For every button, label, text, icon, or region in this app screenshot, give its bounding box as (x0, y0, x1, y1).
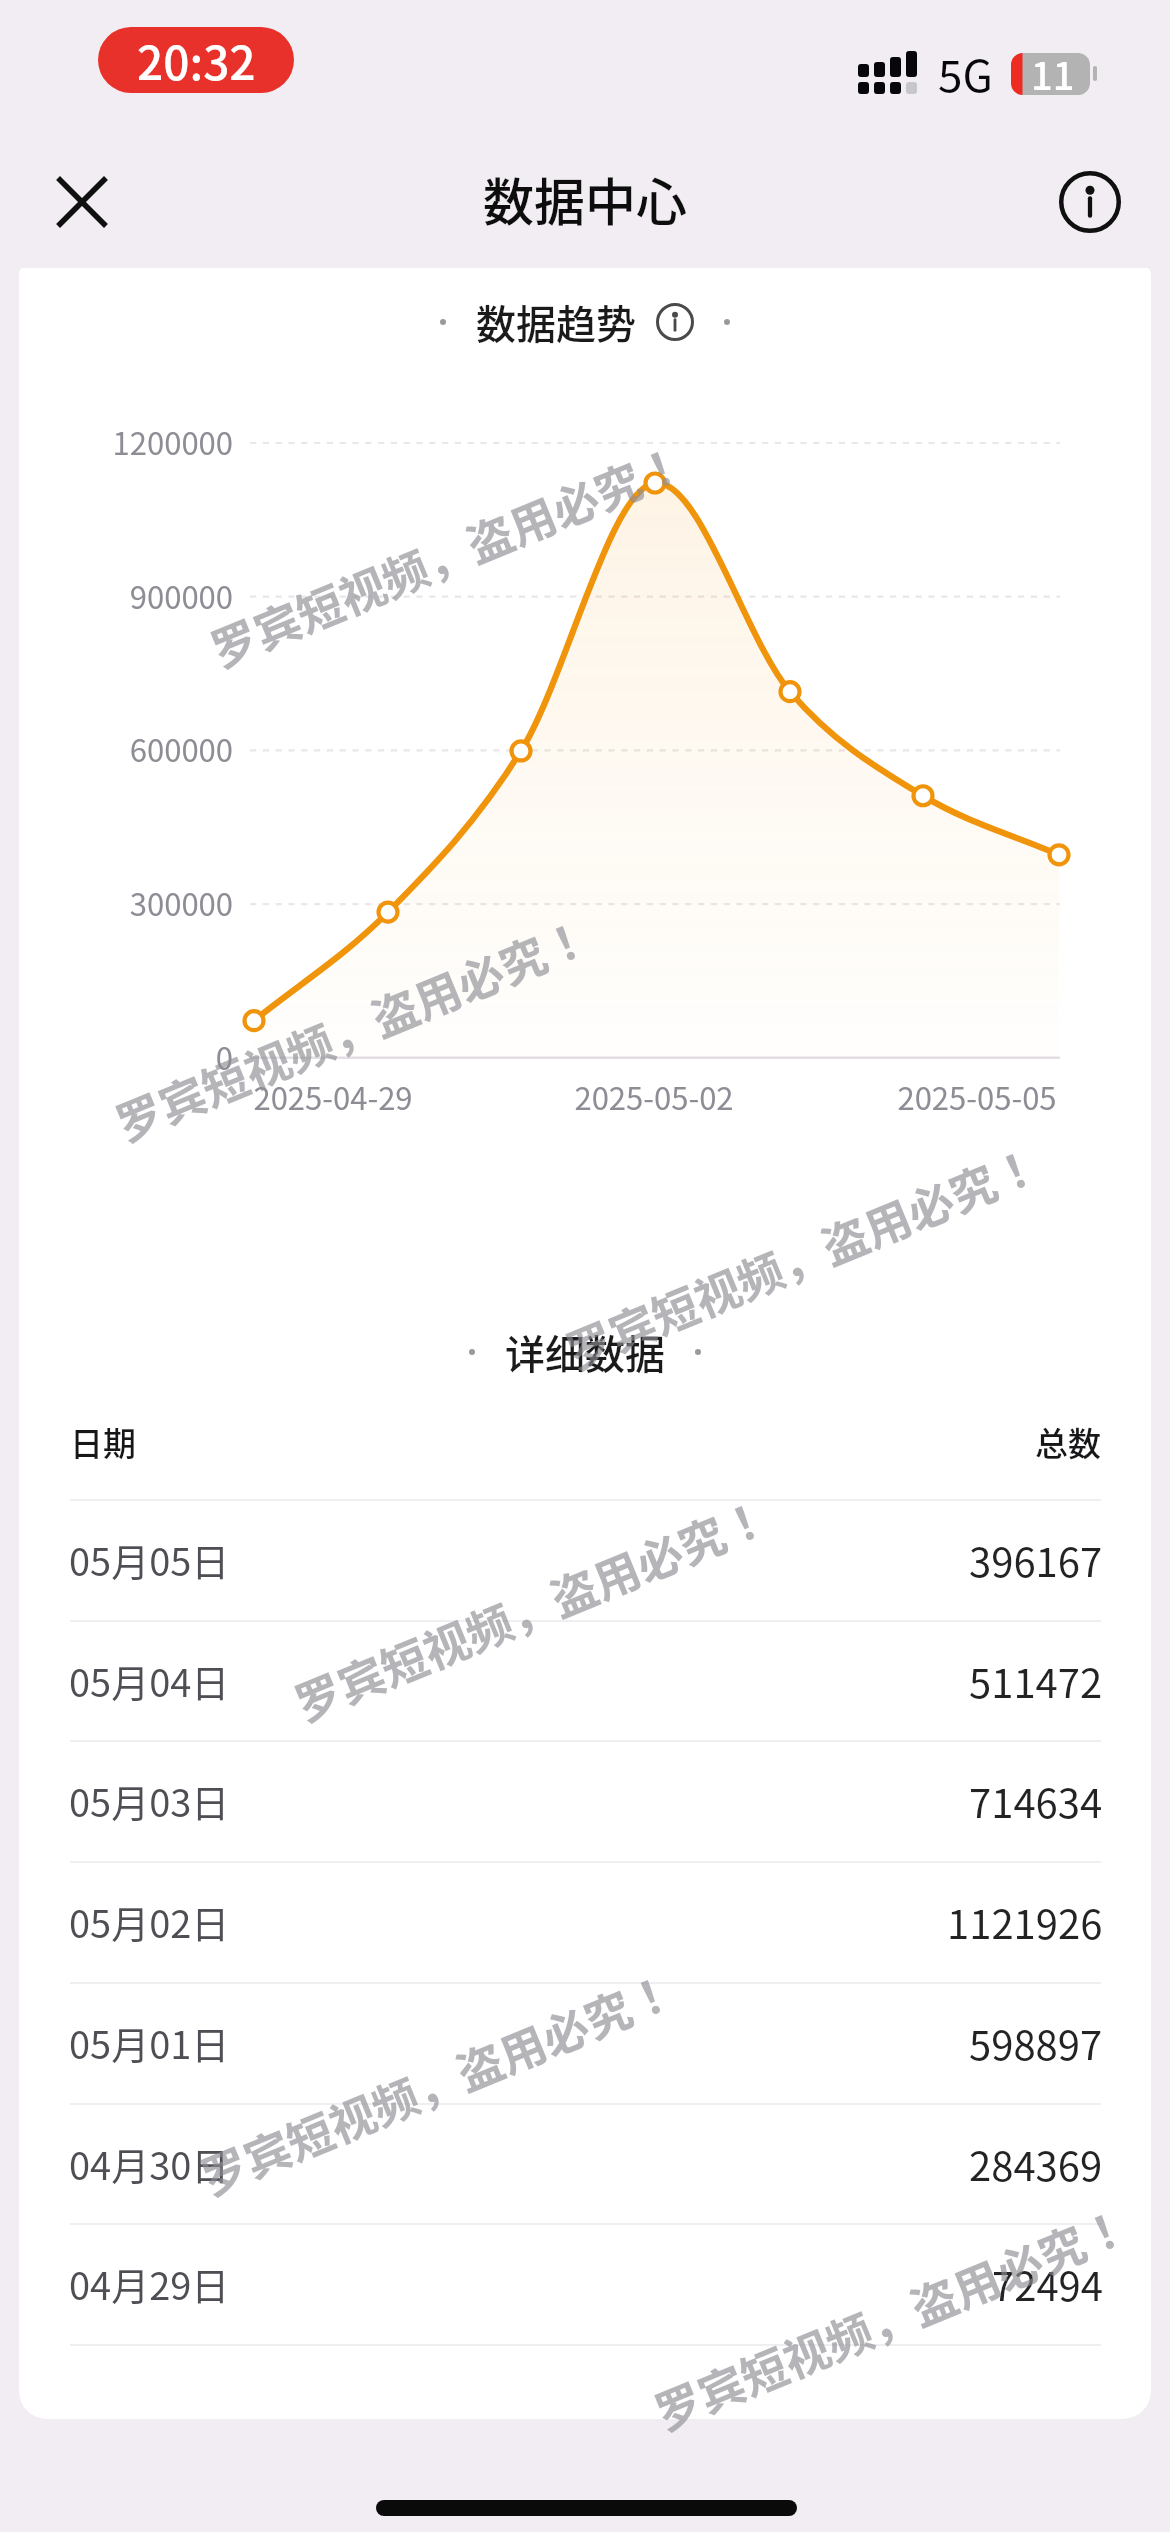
staticText: 300000 (0, 880, 233, 925)
staticText: 2025-05-02 (504, 1074, 804, 1119)
staticText: 05月04日 (69, 1653, 230, 1708)
staticText: 5G (938, 41, 993, 105)
staticText: 罗宾短视频，盗用必究！ (100, 1919, 774, 2246)
staticText: 罗宾短视频，盗用必究！ (15, 865, 689, 1192)
button[interactable]: 05月03日 (19, 1740, 1151, 1861)
button[interactable]: 04月30日 (19, 2103, 1151, 2224)
staticText: 04月29日 (69, 2256, 230, 2311)
staticText: 1200000 (0, 419, 233, 464)
staticText: 1121926 (947, 1893, 1103, 1951)
staticText: 详细数据 (505, 1323, 665, 1381)
staticText: 600000 (0, 726, 233, 771)
button[interactable]: Close (40, 160, 124, 244)
staticText: 罗宾短视频，盗用必究！ (110, 391, 784, 718)
staticText: 511472 (969, 1652, 1103, 1710)
staticText: 72494 (992, 2255, 1103, 2313)
staticText: 396167 (969, 1531, 1103, 1589)
staticText: 05月01日 (69, 2015, 230, 2070)
button[interactable]: Info (1048, 160, 1132, 244)
staticText: 20:32 (137, 27, 256, 93)
staticText: 05月02日 (69, 1894, 230, 1949)
staticText: 罗宾短视频，盗用必究！ (465, 1093, 1139, 1420)
staticText: 0 (0, 1034, 233, 1079)
staticText: 罗宾短视频，盗用必究！ (194, 1445, 868, 1772)
button[interactable]: 05月01日 (19, 1982, 1151, 2103)
staticText: 714634 (969, 1772, 1103, 1830)
staticText: 罗宾短视频，盗用必究！ (554, 2154, 1170, 2481)
staticText: 284369 (969, 2135, 1103, 2193)
staticText: 2025-05-05 (827, 1074, 1127, 1119)
staticText: 05月05日 (69, 1532, 230, 1587)
staticText: 598897 (969, 2014, 1103, 2072)
staticText: 总数 (1035, 1418, 1101, 1466)
staticText: 数据趋势 (476, 293, 636, 351)
staticText: 900000 (0, 573, 233, 618)
staticText: 05月03日 (69, 1773, 230, 1828)
button[interactable]: 05月04日 (19, 1620, 1151, 1741)
staticText: 2025-04-29 (183, 1074, 483, 1119)
staticText: 04月30日 (69, 2136, 230, 2191)
staticText: 日期 (70, 1418, 136, 1466)
button[interactable]: 05月05日 (19, 1499, 1151, 1620)
button[interactable]: 04月29日 (19, 2223, 1151, 2344)
button[interactable]: 05月02日 (19, 1861, 1151, 1982)
staticText: 11 (1031, 46, 1075, 101)
staticText: 数据中心 (483, 162, 688, 236)
